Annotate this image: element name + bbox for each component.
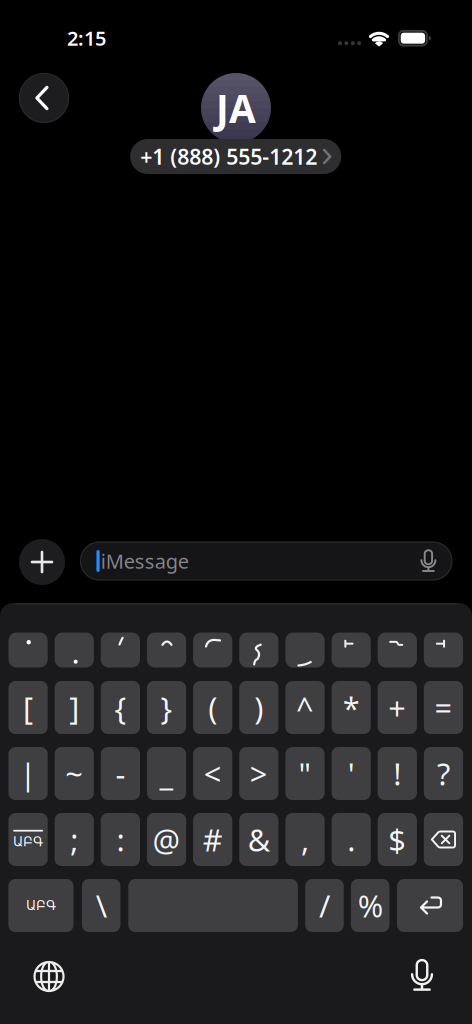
button[interactable]: Mark key 6 <box>285 632 325 667</box>
button[interactable]: . <box>332 813 371 866</box>
button[interactable]: Mark key 0 <box>8 632 48 667</box>
button[interactable]: & <box>239 813 278 866</box>
button[interactable]: Armenian letters <box>8 879 73 932</box>
button[interactable]: Mark key 5 <box>239 632 278 667</box>
staticText: + <box>388 687 406 728</box>
staticText: - <box>115 753 125 794</box>
staticText: ; <box>70 819 78 860</box>
button[interactable]: , <box>285 813 325 866</box>
staticText: 2:15 <box>67 25 106 51</box>
button[interactable]: @ <box>147 813 186 866</box>
button[interactable]: Add attachment <box>19 539 65 585</box>
button[interactable]: ? <box>424 747 463 800</box>
button[interactable]: / <box>305 879 344 932</box>
staticText: ! <box>393 753 401 794</box>
staticText: & <box>248 819 270 860</box>
button[interactable]: { <box>101 681 140 734</box>
button[interactable]: Mark key 7 <box>332 632 371 667</box>
button[interactable]: _ <box>147 747 186 800</box>
staticText: % <box>358 885 383 926</box>
staticText: < <box>204 753 222 794</box>
staticText: [ <box>23 687 33 728</box>
staticText: / <box>319 885 330 926</box>
staticText: * <box>343 687 360 728</box>
staticText: $ <box>388 819 406 860</box>
button[interactable]: ' <box>332 747 371 800</box>
button[interactable]: - <box>101 747 140 800</box>
staticText: ? <box>437 753 450 794</box>
button[interactable]: Mark key 1 <box>55 632 94 667</box>
button[interactable]: ^ <box>285 681 325 734</box>
button[interactable]: ! <box>378 747 417 800</box>
button[interactable]: } <box>147 681 186 734</box>
staticText: ԱԲԳ <box>13 834 43 849</box>
staticText: ԱԲԳ <box>26 898 56 913</box>
button[interactable]: Mark key 8 <box>378 632 417 667</box>
staticText: ' <box>348 753 355 794</box>
button[interactable]: ) <box>239 681 278 734</box>
staticText: \ <box>96 885 107 926</box>
button[interactable]: > <box>239 747 278 800</box>
staticText: ^ <box>296 687 314 728</box>
button[interactable]: ~ <box>55 747 94 800</box>
staticText: ~ <box>65 753 83 794</box>
button[interactable]: Dictation <box>405 958 439 992</box>
staticText: ] <box>69 687 79 728</box>
button[interactable]: Mark key 4 <box>193 632 232 667</box>
button[interactable]: Mark key 2 <box>101 632 140 667</box>
button[interactable]: * <box>332 681 371 734</box>
button[interactable]: : <box>101 813 140 866</box>
staticText: ) <box>254 687 263 728</box>
staticText: iMessage <box>101 548 189 574</box>
button[interactable]: Mark key 9 <box>424 632 463 667</box>
staticText: , <box>301 819 309 860</box>
staticText: } <box>160 687 172 728</box>
button[interactable]: Armenian letters <box>8 813 48 866</box>
staticText: { <box>114 687 126 728</box>
button[interactable]: + <box>378 681 417 734</box>
button[interactable]: % <box>351 879 389 932</box>
staticText: " <box>298 753 311 794</box>
staticText: _ <box>159 753 173 794</box>
button[interactable]: Mark key 3 <box>147 632 186 667</box>
staticText: +1 (888) 555-1212 <box>140 142 317 171</box>
button[interactable]: Delete <box>424 813 463 866</box>
button[interactable]: ( <box>193 681 232 734</box>
button[interactable]: [ <box>8 681 48 734</box>
button[interactable]: ; <box>55 813 94 866</box>
button[interactable]: ] <box>55 681 94 734</box>
staticText: JA <box>216 82 256 134</box>
button[interactable]: $ <box>378 813 417 866</box>
staticText: : <box>116 819 124 860</box>
button[interactable]: # <box>193 813 232 866</box>
button[interactable]: Return <box>397 879 463 932</box>
button[interactable]: Contact JA <box>201 73 271 143</box>
staticText: = <box>434 687 452 728</box>
staticText: > <box>250 753 268 794</box>
button[interactable]: +1 (888) 555-1212 <box>130 139 341 174</box>
staticText: | <box>20 753 37 794</box>
button[interactable]: = <box>424 681 463 734</box>
staticText: ( <box>208 687 217 728</box>
staticText: @ <box>152 819 180 860</box>
button[interactable]: " <box>285 747 325 800</box>
button[interactable]: iMessage text field <box>80 542 452 580</box>
button[interactable]: | <box>8 747 48 800</box>
staticText: . <box>347 819 355 860</box>
button[interactable]: \ <box>82 879 120 932</box>
button[interactable]: Back <box>19 73 69 123</box>
button[interactable]: Next keyboard <box>32 959 66 993</box>
button[interactable]: Dictate <box>416 549 440 573</box>
staticText: # <box>203 819 223 860</box>
button[interactable]: < <box>193 747 232 800</box>
